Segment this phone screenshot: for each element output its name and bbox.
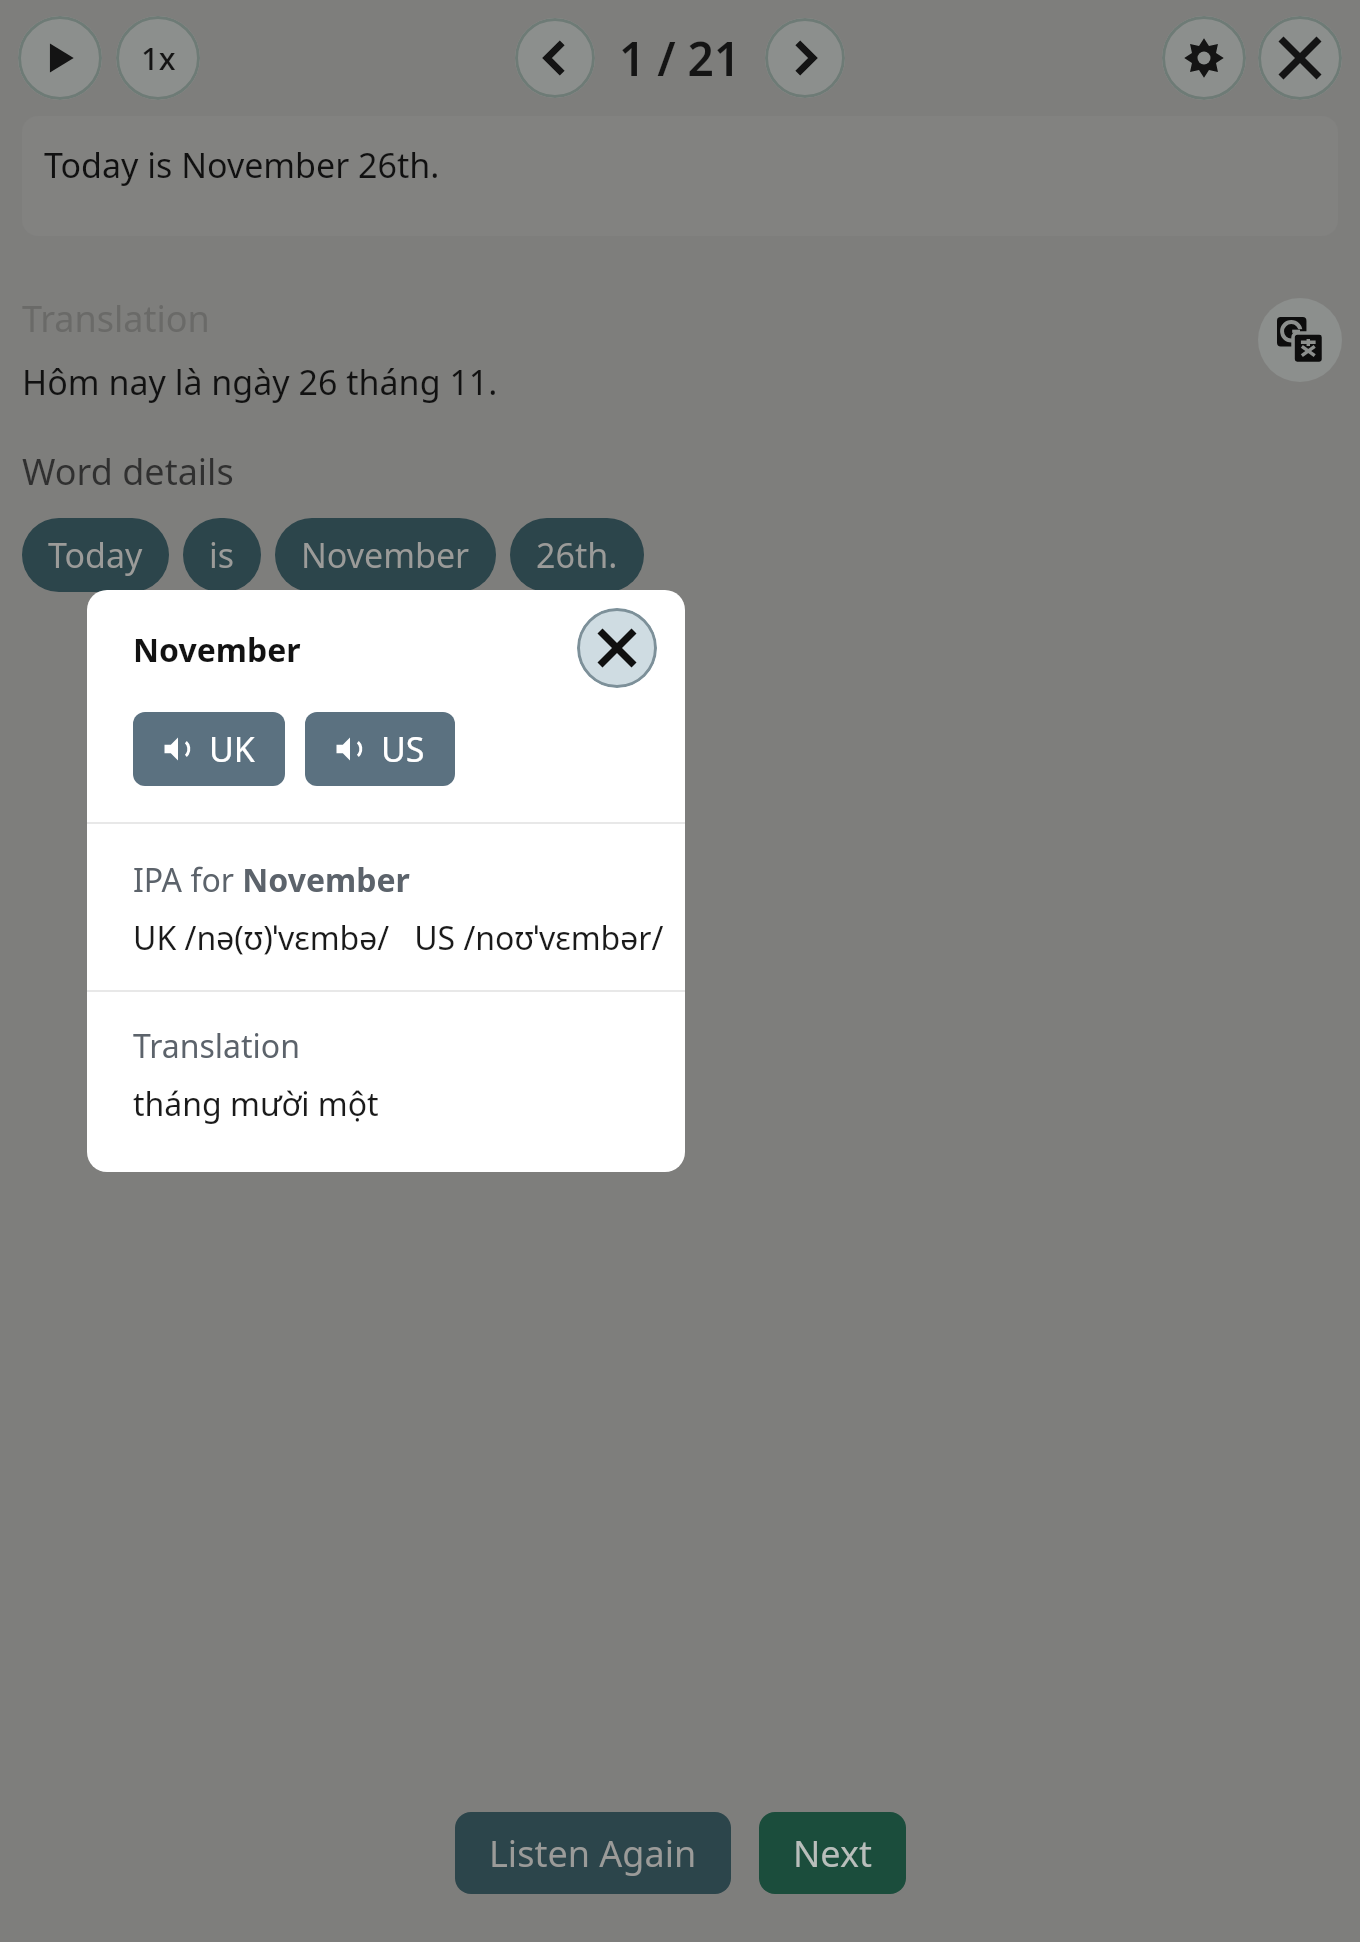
button[interactable]: Today is November 26th. bbox=[22, 116, 1338, 236]
staticText: November bbox=[133, 628, 301, 672]
staticText: Today bbox=[48, 532, 143, 578]
staticText: Translation bbox=[133, 1024, 300, 1068]
staticText: Today is November 26th. bbox=[44, 142, 440, 188]
button[interactable]: Listen Again bbox=[455, 1812, 731, 1894]
button[interactable]: Settings bbox=[1162, 16, 1246, 100]
staticText: Word details bbox=[22, 447, 234, 496]
staticText: Next bbox=[793, 1829, 872, 1878]
button[interactable]: Previous bbox=[515, 18, 595, 98]
staticText: is bbox=[209, 532, 235, 578]
staticText: UK bbox=[209, 726, 255, 772]
button[interactable]: Next bbox=[759, 1812, 906, 1894]
button[interactable]: Open in Google Translate bbox=[1258, 298, 1342, 382]
button[interactable]: Close word details bbox=[577, 608, 657, 688]
button[interactable]: is bbox=[183, 518, 261, 592]
staticText: Translation bbox=[22, 294, 210, 343]
staticText: November bbox=[301, 532, 470, 578]
button[interactable]: US bbox=[305, 712, 455, 786]
staticText: US bbox=[381, 726, 425, 772]
staticText: 1x bbox=[141, 37, 176, 79]
button[interactable]: 26th. bbox=[510, 518, 644, 592]
button[interactable]: November bbox=[275, 518, 496, 592]
staticText: 1 / 21 bbox=[619, 27, 741, 90]
staticText: IPA for November bbox=[133, 858, 410, 902]
button[interactable]: Play bbox=[18, 16, 102, 100]
staticText: Hôm nay là ngày 26 tháng 11. bbox=[22, 359, 498, 405]
button[interactable]: UK bbox=[133, 712, 285, 786]
staticText: UK /nə(ʊ)ˈvɛmbə/ US /noʊˈvɛmbər/ bbox=[133, 916, 664, 960]
button[interactable]: Next sentence bbox=[765, 18, 845, 98]
staticText: Listen Again bbox=[489, 1829, 697, 1878]
staticText: tháng mười một bbox=[133, 1082, 379, 1126]
button[interactable]: Close bbox=[1258, 16, 1342, 100]
button[interactable]: Today bbox=[22, 518, 169, 592]
staticText: 26th. bbox=[536, 532, 618, 578]
button[interactable]: Playback speed bbox=[116, 16, 200, 100]
